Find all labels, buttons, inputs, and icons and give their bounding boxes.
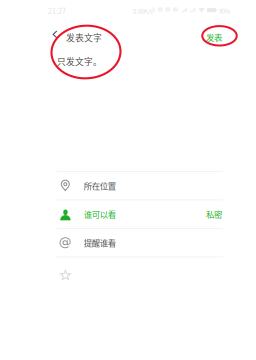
- staticText: 发表文字: [66, 31, 102, 44]
- staticText: @: [59, 234, 72, 249]
- staticText: 0.00K/s: [133, 7, 153, 15]
- staticText: 所在位置: [84, 179, 116, 192]
- button[interactable]: @: [56, 228, 223, 256]
- button[interactable]: Back: [48, 26, 61, 42]
- staticText: 21:27: [48, 5, 66, 16]
- button[interactable]: 谁可以看: [56, 199, 223, 228]
- staticText: 90%: [219, 7, 230, 15]
- button[interactable]: [56, 256, 223, 285]
- button[interactable]: 发表: [202, 28, 226, 46]
- staticText: 私密: [206, 208, 222, 220]
- staticText: 只发文字。: [57, 55, 102, 67]
- staticText: 发表: [206, 31, 222, 43]
- staticText: 谁可以看: [84, 208, 116, 220]
- button[interactable]: 所在位置: [56, 171, 223, 199]
- staticText: 提醒谁看: [84, 236, 116, 249]
